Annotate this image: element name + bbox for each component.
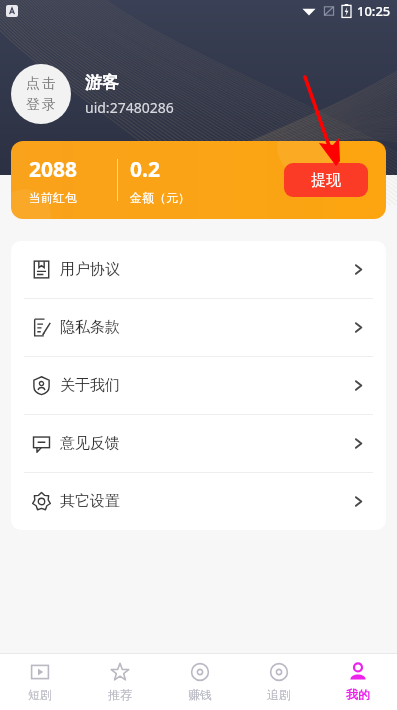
staticText: 关于我们 <box>60 376 120 395</box>
staticText: 赚钱 <box>188 687 212 702</box>
staticText: 用户协议 <box>60 260 120 279</box>
staticText: 提现 <box>311 171 341 190</box>
staticText: 追剧 <box>267 687 291 702</box>
staticText: 登录 <box>25 96 57 114</box>
staticText: uid:27480286 <box>85 98 174 117</box>
staticText: 隐私条款 <box>60 318 120 337</box>
button[interactable]: 用户协议 <box>11 241 386 298</box>
button[interactable]: 意见反馈 <box>11 415 386 472</box>
staticText: 当前红包 <box>29 190 77 205</box>
staticText: 2088 <box>29 155 78 184</box>
staticText: 点击 <box>25 75 57 93</box>
staticText: 其它设置 <box>60 492 120 511</box>
staticText: 短剧 <box>28 687 52 702</box>
staticText: 游客 <box>85 72 119 93</box>
staticText: 意见反馈 <box>60 434 120 453</box>
staticText: 10:25 <box>357 2 391 20</box>
button[interactable]: 点击 <box>11 64 71 124</box>
button[interactable]: 短剧 <box>0 654 80 710</box>
staticText: 我的 <box>346 687 370 702</box>
button[interactable]: 关于我们 <box>11 357 386 414</box>
staticText: 金额（元） <box>130 190 190 205</box>
staticText: 0.2 <box>130 155 160 184</box>
button[interactable]: 赚钱 <box>160 654 239 710</box>
button[interactable]: 提现 <box>284 163 368 197</box>
button[interactable]: 追剧 <box>239 654 318 710</box>
button[interactable]: 隐私条款 <box>11 299 386 356</box>
staticText: 推荐 <box>108 687 132 702</box>
button[interactable]: 推荐 <box>80 654 160 710</box>
button[interactable]: 其它设置 <box>11 473 386 530</box>
button[interactable]: 我的 <box>318 654 397 710</box>
